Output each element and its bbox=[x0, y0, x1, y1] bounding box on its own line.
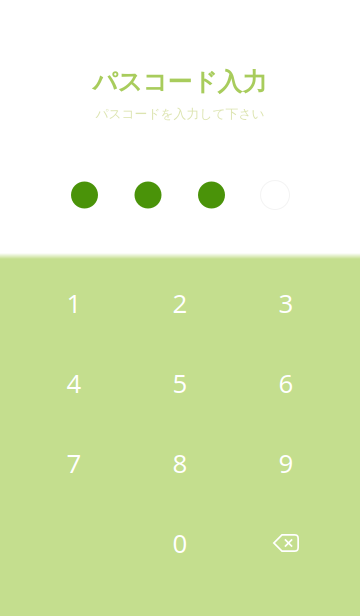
staticText: 3 bbox=[278, 285, 293, 321]
staticText: 0 bbox=[172, 525, 187, 561]
staticText: 5 bbox=[172, 365, 187, 401]
staticText: 1 bbox=[66, 285, 81, 321]
button[interactable]: 0 bbox=[127, 503, 233, 583]
button[interactable]: 1 bbox=[21, 263, 127, 343]
button[interactable]: 9 bbox=[233, 423, 339, 503]
staticText: 9 bbox=[278, 445, 293, 481]
staticText: 6 bbox=[278, 365, 293, 401]
button[interactable]: 8 bbox=[127, 423, 233, 503]
button[interactable]: 2 bbox=[127, 263, 233, 343]
button[interactable]: 7 bbox=[21, 423, 127, 503]
button[interactable]: 4 bbox=[21, 343, 127, 423]
staticText: 4 bbox=[66, 365, 81, 401]
button[interactable]: 3 bbox=[233, 263, 339, 343]
staticText: 8 bbox=[172, 445, 187, 481]
staticText: パスコード入力 bbox=[92, 66, 267, 97]
button[interactable]: 5 bbox=[127, 343, 233, 423]
staticText: 2 bbox=[172, 285, 187, 321]
staticText: パスコードを入力して下さい bbox=[95, 106, 264, 122]
button[interactable]: 6 bbox=[233, 343, 339, 423]
staticText: 7 bbox=[66, 445, 81, 481]
button[interactable]: Delete bbox=[233, 503, 339, 583]
